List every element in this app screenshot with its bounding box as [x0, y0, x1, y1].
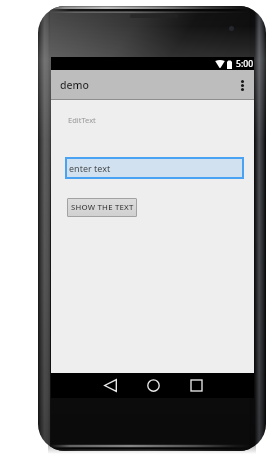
staticText: EditText [68, 115, 96, 125]
staticText: SHOW THE TEXT [71, 202, 134, 213]
staticText: enter text [69, 162, 111, 174]
button[interactable]: Back [95, 373, 125, 398]
button[interactable]: enter text [65, 157, 244, 179]
button[interactable]: SHOW THE TEXT [67, 198, 137, 217]
staticText: demo [60, 78, 89, 92]
button[interactable]: Recents [181, 373, 211, 398]
staticText: 5:00 [236, 58, 254, 70]
button[interactable]: More options [230, 70, 254, 100]
button[interactable]: Home [138, 373, 168, 398]
